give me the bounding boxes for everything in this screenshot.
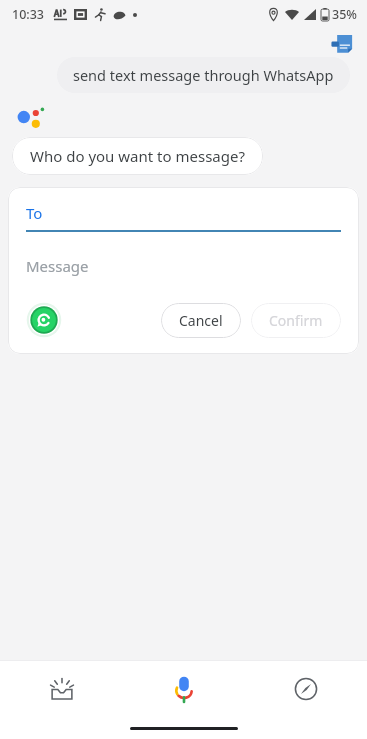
staticText: Cancel bbox=[179, 311, 223, 330]
button[interactable]: WhatsApp bbox=[26, 302, 62, 338]
button[interactable]: Explore bbox=[245, 661, 367, 717]
button[interactable]: To bbox=[26, 203, 341, 232]
staticText: 35% bbox=[332, 6, 357, 23]
button[interactable]: Cancel bbox=[161, 303, 241, 338]
button[interactable]: Confirm bbox=[251, 303, 341, 338]
button[interactable]: Snapshot bbox=[0, 661, 123, 717]
staticText: 10:33 bbox=[12, 6, 45, 23]
staticText: To bbox=[26, 203, 43, 223]
staticText: Who do you want to message? bbox=[30, 146, 245, 166]
staticText: Confirm bbox=[269, 311, 323, 330]
button[interactable]: Voice input bbox=[123, 661, 245, 717]
button[interactable]: Message bbox=[26, 256, 341, 276]
button[interactable]: send text message through WhatsApp bbox=[57, 57, 350, 93]
staticText: Message bbox=[26, 256, 89, 276]
button[interactable]: Who do you want to message? bbox=[12, 137, 263, 175]
staticText: send text message through WhatsApp bbox=[73, 65, 334, 85]
